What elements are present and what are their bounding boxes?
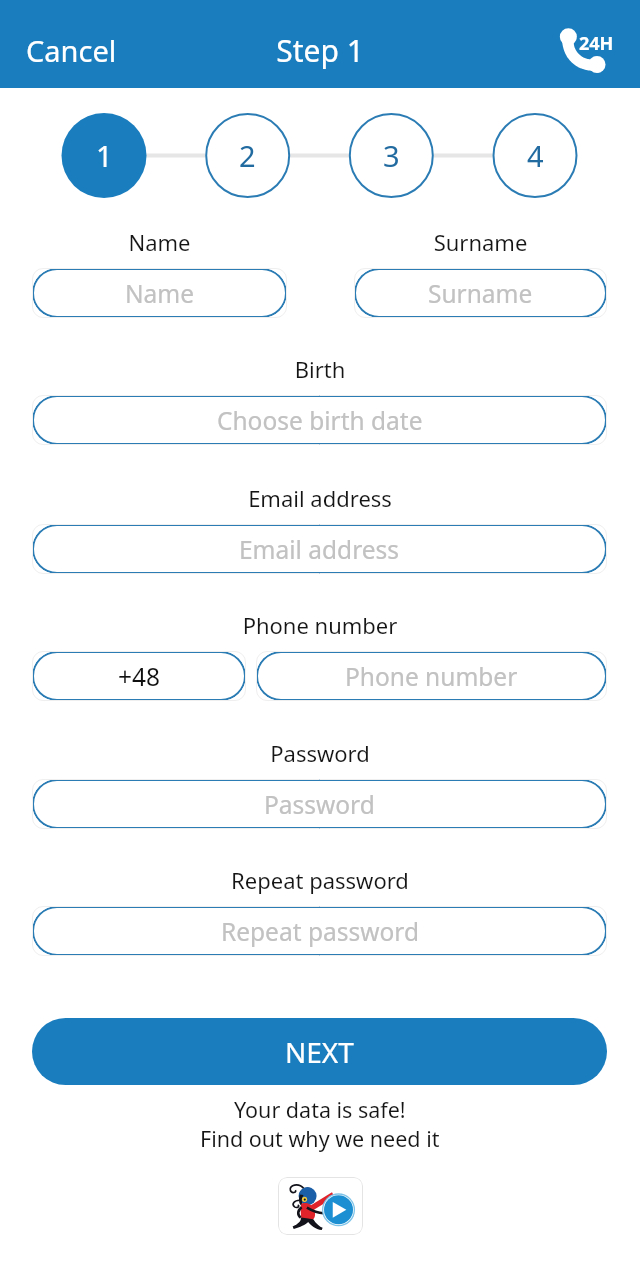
button[interactable]: 1: [62, 113, 147, 198]
button[interactable]: Phone number: [256, 651, 607, 701]
staticText: 2: [239, 136, 256, 175]
staticText: Name: [125, 277, 195, 310]
staticText: Email address: [239, 533, 400, 566]
button[interactable]: 4: [493, 113, 578, 198]
button[interactable]: Surname: [354, 268, 607, 318]
staticText: 1: [96, 136, 113, 175]
staticText: Choose birth date: [217, 404, 423, 437]
staticText: Find out why we need it: [200, 1124, 440, 1153]
staticText: Phone number: [0, 610, 640, 640]
button[interactable]: Password: [32, 779, 607, 829]
button[interactable]: Your data is safe!: [0, 1095, 640, 1153]
staticText: Birth: [0, 354, 640, 384]
staticText: Your data is safe!: [234, 1095, 406, 1124]
button[interactable]: 3: [349, 113, 434, 198]
staticText: 4: [527, 136, 544, 175]
button[interactable]: Call 24 hour support: [549, 18, 611, 76]
button[interactable]: NEXT: [32, 1018, 607, 1085]
staticText: Email address: [0, 483, 640, 513]
button[interactable]: Email address: [32, 524, 607, 574]
button[interactable]: Name: [32, 268, 287, 318]
button[interactable]: Watch video: [278, 1177, 363, 1235]
button[interactable]: Country code: [32, 651, 246, 701]
button[interactable]: Cancel: [12, 25, 131, 76]
staticText: Step 1: [0, 30, 640, 71]
staticText: NEXT: [285, 1033, 354, 1071]
staticText: Surname: [354, 227, 607, 257]
button[interactable]: Repeat password: [32, 906, 607, 956]
staticText: Repeat password: [221, 915, 419, 948]
staticText: Password: [264, 788, 375, 821]
staticText: +48: [118, 660, 161, 693]
staticText: Name: [32, 227, 287, 257]
staticText: Repeat password: [0, 865, 640, 895]
staticText: 24H: [579, 31, 614, 56]
staticText: Password: [0, 738, 640, 768]
button[interactable]: 2: [205, 113, 290, 198]
staticText: Cancel: [26, 31, 117, 70]
staticText: 3: [383, 136, 400, 175]
staticText: Surname: [428, 277, 533, 310]
button[interactable]: Choose birth date: [32, 395, 607, 445]
staticText: Phone number: [345, 660, 518, 693]
